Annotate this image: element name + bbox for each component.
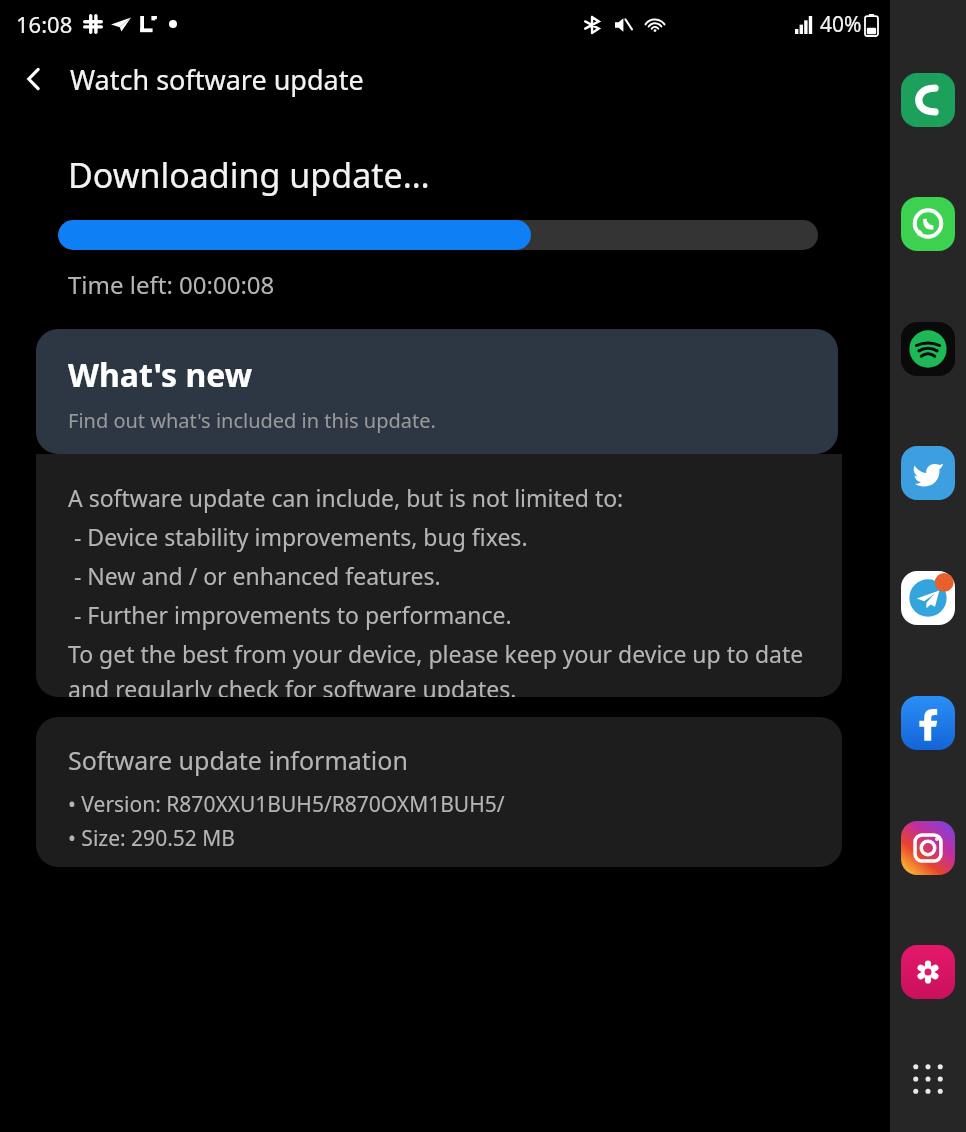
button[interactable]: Gallery xyxy=(899,943,957,1001)
staticText: Time left: 00:00:08 xyxy=(68,268,275,301)
staticText: A software update can include, but is no… xyxy=(68,482,624,513)
staticText: Software update information xyxy=(68,743,408,777)
button[interactable]: Telegram xyxy=(899,569,957,627)
button[interactable]: Spotify xyxy=(899,320,957,378)
button[interactable]: Facebook xyxy=(899,694,957,752)
staticText: Find out what's included in this update. xyxy=(68,407,436,434)
staticText: Downloading update… xyxy=(68,152,430,198)
staticText: What's new xyxy=(68,353,253,397)
button[interactable]: WhatsApp xyxy=(899,195,957,253)
button[interactable]: Twitter xyxy=(899,444,957,502)
staticText: • Version: R870XXU1BUH5/R870OXM1BUH5/ xyxy=(68,790,505,819)
button[interactable]: Instagram xyxy=(899,819,957,877)
button[interactable]: Contacts xyxy=(899,71,957,129)
button[interactable]: What's new xyxy=(36,329,838,454)
staticText: • Size: 290.52 MB xyxy=(68,824,235,853)
button[interactable]: Back xyxy=(8,53,60,105)
staticText: - Further improvements to performance. xyxy=(68,599,512,630)
staticText: 40% xyxy=(820,10,862,39)
button[interactable]: Software update information xyxy=(36,717,842,867)
staticText: - Device stability improvements, bug fix… xyxy=(68,521,528,552)
staticText: - New and / or enhanced features. xyxy=(68,560,441,591)
staticText: Watch software update xyxy=(70,61,364,98)
staticText: To get the best from your device, please… xyxy=(68,638,820,697)
staticText: 16:08 xyxy=(16,9,73,39)
button[interactable]: Apps xyxy=(902,1053,954,1105)
